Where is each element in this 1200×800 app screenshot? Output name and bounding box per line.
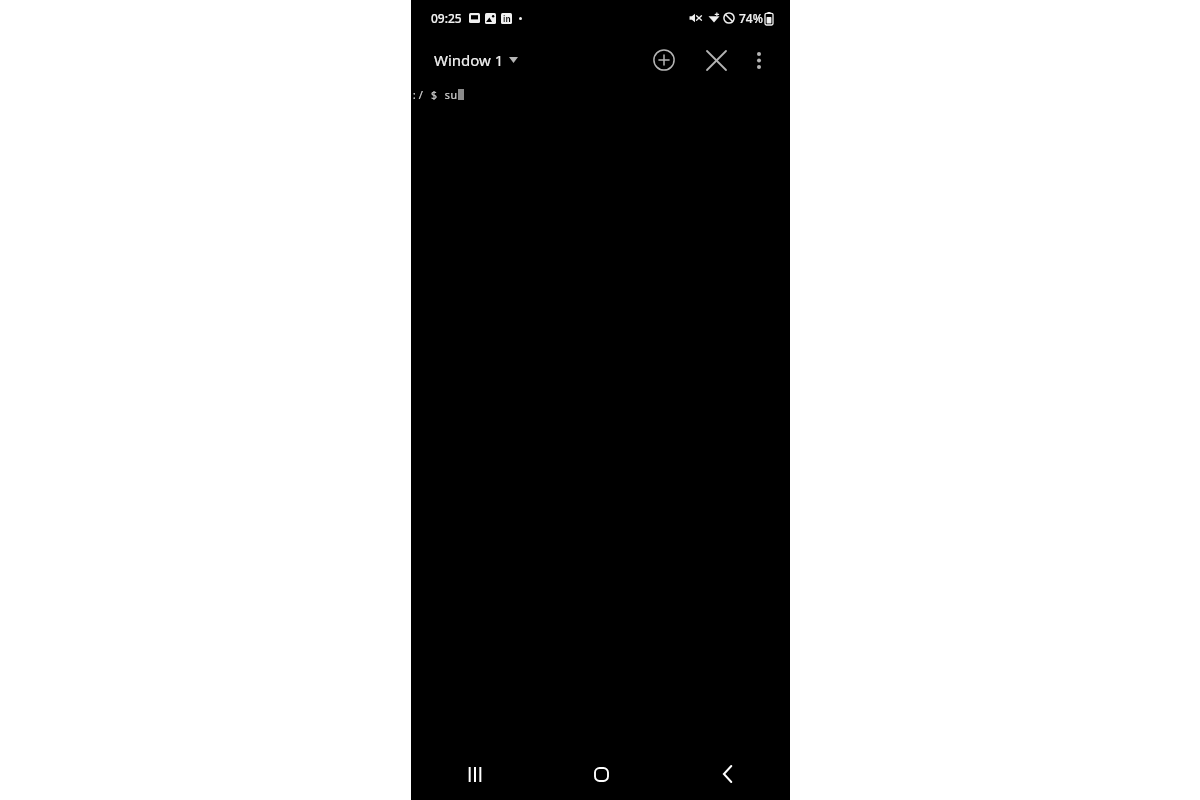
staticText: :/ $ su xyxy=(411,87,458,102)
button[interactable]: Close window xyxy=(696,40,736,80)
button[interactable]: New window xyxy=(644,40,684,80)
staticText: Window 1 xyxy=(434,50,504,70)
button[interactable]: Home xyxy=(538,748,664,800)
button[interactable]: Window 1 xyxy=(428,45,524,75)
button[interactable]: Recent apps xyxy=(411,748,538,800)
staticText: in xyxy=(503,13,511,24)
staticText: 09:25 xyxy=(431,10,462,26)
button[interactable]: Back xyxy=(664,748,790,800)
button[interactable]: More options xyxy=(739,40,779,80)
staticText: 74% xyxy=(739,10,763,26)
button[interactable]: :/ $ su xyxy=(411,83,790,748)
